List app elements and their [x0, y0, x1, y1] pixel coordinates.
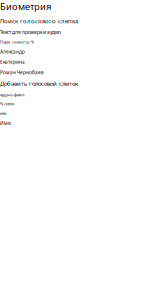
staticText: % совпа	[0, 101, 14, 106]
staticText: аудио-файл	[0, 92, 25, 97]
staticText: Екатерина	[0, 59, 25, 65]
staticText: Текст для проверки аудио	[0, 29, 61, 35]
staticText: Биометрия	[0, 0, 51, 13]
staticText: Порог схожести, %	[0, 39, 34, 44]
staticText: Добавить голосовой слепок	[0, 80, 78, 88]
staticText: или	[0, 110, 6, 116]
staticText: Имя	[0, 120, 11, 126]
staticText: Поиск голосового слепка	[0, 17, 78, 25]
staticText: Роман Чернобаев	[0, 69, 44, 76]
staticText: Александр	[0, 48, 25, 55]
